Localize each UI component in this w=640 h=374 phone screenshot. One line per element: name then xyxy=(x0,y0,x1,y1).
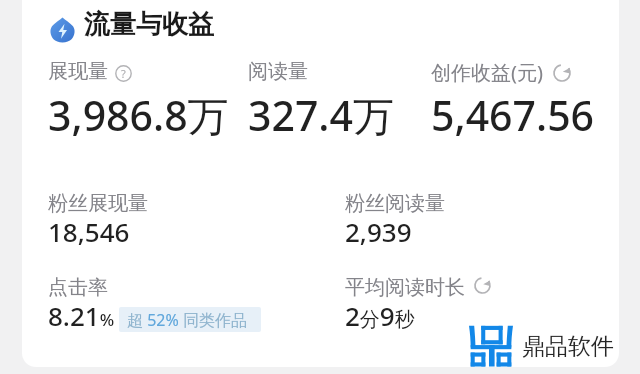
staticText: 流量与收益 xyxy=(84,8,214,41)
button[interactable]: Refresh xyxy=(474,277,491,294)
staticText: ? xyxy=(121,66,126,81)
staticText: 阅读量 xyxy=(248,59,308,84)
button[interactable]: Refresh xyxy=(553,64,571,82)
staticText: 创作收益(元) xyxy=(431,59,543,86)
staticText: 2,939 xyxy=(345,214,412,249)
staticText: 鼎品软件 xyxy=(522,332,614,361)
staticText: 327.4万 xyxy=(248,87,394,143)
staticText: 3,986.8万 xyxy=(48,87,229,143)
button[interactable]: 超 52% 同类作品 xyxy=(119,307,261,332)
staticText: 超 52% 同类作品 xyxy=(127,309,247,331)
button[interactable]: 流量与收益 xyxy=(50,8,214,41)
staticText: 粉丝阅读量 xyxy=(345,191,445,216)
staticText: 5,467.56 xyxy=(431,87,595,143)
staticText: 展现量 xyxy=(48,59,108,84)
staticText: 2分9秒 xyxy=(345,298,415,333)
staticText: 18,546 xyxy=(48,214,130,249)
button[interactable]: Help xyxy=(115,65,132,82)
staticText: 平均阅读时长 xyxy=(345,275,465,300)
staticText: 粉丝展现量 xyxy=(48,191,148,216)
staticText: 点击率 xyxy=(48,275,108,300)
staticText: 8.21% xyxy=(48,298,115,333)
